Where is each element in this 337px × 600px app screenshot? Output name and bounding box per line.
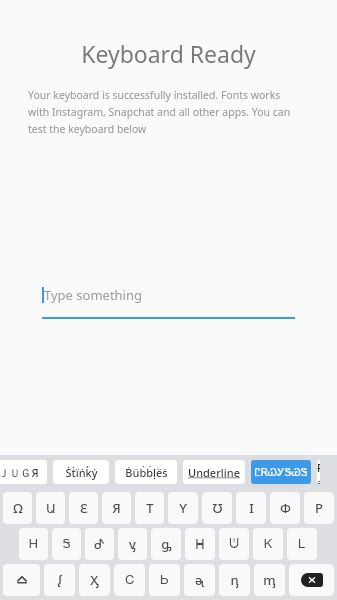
staticText: Ω <box>13 499 23 517</box>
staticText: ＪＵＧЯ <box>0 465 39 480</box>
button[interactable]: Ա <box>36 492 65 524</box>
staticText: Ɛ <box>80 499 88 517</box>
button[interactable]: Ρ <box>304 492 334 524</box>
staticText: Ф <box>280 499 291 517</box>
button[interactable]: Т <box>135 492 164 524</box>
staticText: Ρ <box>315 499 323 517</box>
staticText: ᏝᏒᏇᎩᏕᏊᏕ <box>254 467 308 478</box>
button[interactable]: Ф <box>270 492 300 524</box>
button[interactable]: Ω <box>3 492 32 524</box>
staticText: Я <box>112 499 121 517</box>
button[interactable]: Ꭶ <box>52 528 81 560</box>
button[interactable]: Ḃüḃḃḷëṡ <box>115 460 177 484</box>
staticText: ᶌ <box>129 535 136 553</box>
staticText: ᶆ <box>263 571 276 589</box>
staticText: Ƴ <box>179 499 187 517</box>
staticText: Ꭶ <box>62 538 71 551</box>
button[interactable]: ᕼ <box>185 528 215 560</box>
button[interactable]: ᶆ <box>254 564 285 596</box>
button[interactable]: Ʊ <box>202 492 232 524</box>
staticText: Ꮮ <box>298 538 306 551</box>
button[interactable]: Backspace <box>289 564 334 596</box>
button[interactable]: Rays <box>317 460 320 484</box>
staticText: ᶃ <box>161 535 172 553</box>
button[interactable]: Ꮯ <box>114 564 145 596</box>
button[interactable]: ＪＵＧЯ <box>0 460 47 484</box>
staticText: Ꮯ <box>125 574 135 587</box>
staticText: Underline <box>188 465 240 480</box>
staticText: ᕫ <box>229 538 239 551</box>
staticText: Ṡṫïṅḱẏ <box>65 465 98 480</box>
staticText: Ʊ <box>212 499 223 517</box>
staticText: Keyboard Ready <box>0 38 337 69</box>
button[interactable]: Ꮋ <box>19 528 48 560</box>
button[interactable]: ᕷ <box>85 528 114 560</box>
button[interactable]: ᶕ <box>184 564 215 596</box>
staticText: ᶇ <box>230 571 239 589</box>
staticText: Ꮶ <box>264 538 273 551</box>
staticText: Type something <box>44 286 142 304</box>
button[interactable]: Я <box>102 492 131 524</box>
button[interactable]: ᏝᏒᏇᎩᏕᏊᏕ <box>251 460 311 484</box>
button[interactable]: ᕫ <box>219 528 249 560</box>
button[interactable]: ᶘ <box>44 564 75 596</box>
staticText: ᕷ <box>94 537 105 552</box>
button[interactable]: ᶌ <box>118 528 147 560</box>
staticText: ᶘ <box>58 571 62 589</box>
button[interactable]: Shift <box>3 564 40 596</box>
button[interactable]: Ɛ <box>69 492 98 524</box>
button[interactable]: Ꮶ <box>253 528 283 560</box>
staticText: Ӽ <box>90 571 99 589</box>
staticText: Ꮟ <box>160 574 169 587</box>
button[interactable]: ᶇ <box>219 564 250 596</box>
staticText: Т <box>146 499 154 517</box>
staticText: Ꮋ <box>29 538 38 551</box>
staticText: Ḃüḃḃḷëṡ <box>125 465 168 480</box>
button[interactable]: Underline <box>183 460 245 484</box>
button[interactable]: Ӽ <box>79 564 110 596</box>
button[interactable]: Ꮮ <box>287 528 317 560</box>
button[interactable]: Ƴ <box>168 492 198 524</box>
button[interactable]: ᶃ <box>151 528 181 560</box>
staticText: Rays <box>317 460 320 484</box>
staticText: Your keyboard is successfully installed.… <box>28 88 295 136</box>
button[interactable]: Ꮟ <box>149 564 180 596</box>
button[interactable]: Ṡṫïṅḱẏ <box>53 460 109 484</box>
staticText: Ա <box>46 501 56 516</box>
staticText: ᕼ <box>195 537 205 552</box>
button[interactable]: I <box>236 492 266 524</box>
staticText: ᶕ <box>195 571 204 589</box>
staticText: I <box>249 499 254 517</box>
